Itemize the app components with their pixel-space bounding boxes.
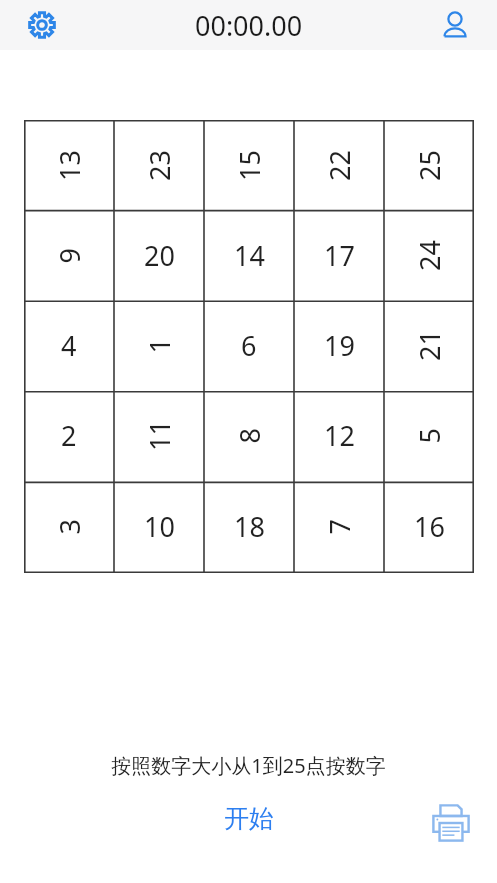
button[interactable]: 8 — [204, 390, 294, 480]
button[interactable]: 16 — [384, 480, 474, 573]
staticText: 4 — [61, 327, 77, 364]
staticText: 18 — [234, 508, 265, 545]
staticText: 17 — [324, 237, 355, 274]
button[interactable]: 22 — [294, 120, 384, 210]
button[interactable]: 14 — [204, 210, 294, 300]
staticText: 24 — [411, 240, 448, 271]
button[interactable]: 3 — [24, 480, 114, 573]
button[interactable]: 20 — [114, 210, 204, 300]
button[interactable]: 6 — [204, 300, 294, 390]
button[interactable]: 15 — [204, 120, 294, 210]
staticText: 9 — [50, 247, 87, 263]
staticText: 1 — [140, 337, 177, 353]
staticText: 13 — [51, 150, 88, 181]
staticText: 16 — [414, 508, 445, 545]
button[interactable]: Profile — [431, 1, 479, 49]
button[interactable]: 19 — [294, 300, 384, 390]
button[interactable]: 18 — [204, 480, 294, 573]
button[interactable]: 5 — [384, 390, 474, 480]
staticText: 3 — [50, 518, 87, 534]
button[interactable]: 17 — [294, 210, 384, 300]
staticText: 7 — [320, 518, 357, 534]
button[interactable]: 9 — [24, 210, 114, 300]
button[interactable]: Settings — [18, 1, 66, 49]
button[interactable]: 23 — [114, 120, 204, 210]
button[interactable]: 21 — [384, 300, 474, 390]
button[interactable]: 2 — [24, 390, 114, 480]
staticText: 20 — [144, 237, 175, 274]
button[interactable]: 11 — [114, 390, 204, 480]
button[interactable]: 12 — [294, 390, 384, 480]
staticText: 2 — [61, 417, 77, 454]
staticText: 22 — [321, 150, 358, 181]
staticText: 19 — [324, 327, 355, 364]
button[interactable]: 13 — [24, 120, 114, 210]
staticText: 14 — [234, 237, 265, 274]
staticText: 12 — [324, 417, 355, 454]
button[interactable]: 25 — [384, 120, 474, 210]
staticText: 00:00.00 — [195, 7, 303, 44]
button[interactable]: 1 — [114, 300, 204, 390]
staticText: 10 — [144, 508, 175, 545]
staticText: 23 — [141, 150, 178, 181]
button[interactable]: 24 — [384, 210, 474, 300]
staticText: 15 — [231, 150, 268, 181]
button[interactable]: 10 — [114, 480, 204, 573]
button[interactable]: 开始 — [224, 803, 274, 834]
staticText: 按照数字大小从1到25点按数字 — [0, 752, 497, 779]
staticText: 开始 — [224, 803, 274, 834]
staticText: 21 — [411, 330, 448, 361]
staticText: 8 — [230, 427, 267, 443]
button[interactable]: 7 — [294, 480, 384, 573]
staticText: 6 — [241, 327, 257, 364]
staticText: 5 — [410, 427, 447, 443]
button[interactable]: 4 — [24, 300, 114, 390]
button[interactable]: Print — [423, 795, 479, 851]
staticText: 11 — [141, 420, 178, 451]
staticText: 25 — [411, 150, 448, 181]
